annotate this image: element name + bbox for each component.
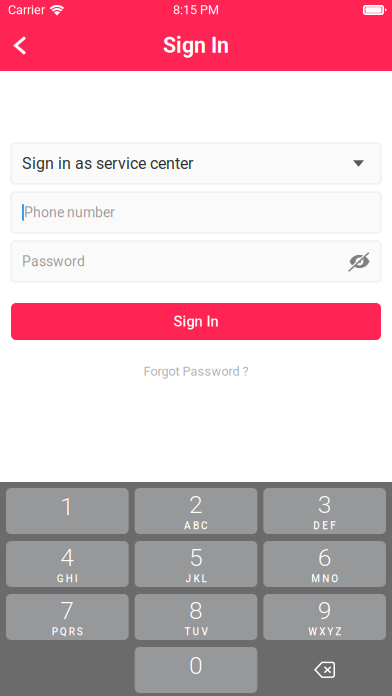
staticText: Sign In [173,313,218,330]
staticText: Forgot Password ? [143,364,248,379]
button[interactable]: Back [0,24,42,67]
staticText: 3 [318,490,332,519]
button[interactable]: 6 [263,541,386,587]
button[interactable]: 8 [135,594,257,640]
button[interactable]: 4 [6,541,129,587]
staticText: 1 [60,492,74,521]
staticText: JKL [185,573,206,585]
button[interactable]: 7 [6,594,129,640]
staticText: GHI [57,573,78,585]
staticText: 4 [60,543,74,572]
button[interactable]: 2 [135,488,257,534]
staticText: Phone number [24,204,115,221]
staticText: PQRS [52,626,83,638]
staticText: Carrier [8,3,45,17]
staticText: 2 [189,490,203,519]
button[interactable]: 5 [135,541,257,587]
staticText: Password [22,253,85,270]
staticText: Sign In [163,33,229,58]
staticText: 5 [189,543,203,572]
staticText: Sign in as service center [22,154,193,173]
button[interactable]: 9 [263,594,386,640]
staticText: 7 [60,596,74,625]
staticText: 8:15 PM [173,3,219,17]
button[interactable]: 1 [6,488,129,534]
staticText: 9 [318,596,332,625]
staticText: MNO [311,573,338,585]
button[interactable]: 3 [263,488,386,534]
staticText: ABC [184,520,208,532]
staticText: 0 [189,651,203,680]
staticText: TUV [184,626,207,638]
button[interactable]: Delete [263,647,386,693]
staticText: 8 [189,596,203,625]
staticText: DEF [313,520,336,532]
button[interactable]: Forgot Password ? [137,358,254,385]
button[interactable]: Sign In [11,303,381,340]
staticText: WXYZ [308,626,341,638]
button[interactable]: Show password [341,252,370,270]
staticText: 6 [318,543,332,572]
button[interactable]: 0 [135,647,257,693]
